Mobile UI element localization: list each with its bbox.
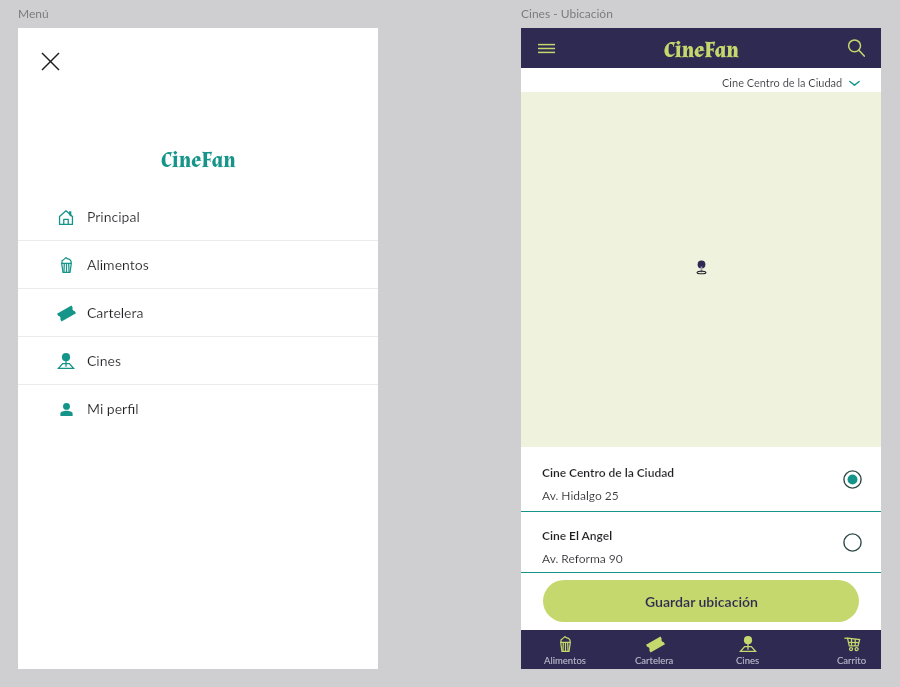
button[interactable]: Cine Centro de la Ciudad xyxy=(521,68,881,92)
button[interactable]: Abrir menú xyxy=(530,32,562,64)
staticText: Alimentos xyxy=(544,655,586,666)
staticText: CineFan xyxy=(161,147,236,174)
button[interactable]: Carrito xyxy=(819,630,885,669)
staticText: Cines - Ubicación xyxy=(521,6,613,20)
staticText: Mi perfil xyxy=(87,400,139,417)
staticText: Principal xyxy=(87,208,140,225)
staticText: Av. Reforma 90 xyxy=(542,551,623,565)
staticText: CineFan xyxy=(664,37,739,64)
staticText: Carrito xyxy=(837,655,867,666)
staticText: Cartelera xyxy=(635,655,674,666)
staticText: Cine Centro de la Ciudad xyxy=(722,76,843,89)
staticText: Guardar ubicación xyxy=(645,593,758,610)
button[interactable]: Mi perfil xyxy=(18,385,378,432)
button[interactable]: Cine Centro de la Ciudad xyxy=(521,447,881,511)
button[interactable]: Guardar ubicación xyxy=(543,580,859,622)
button[interactable]: Cartelera xyxy=(18,289,378,336)
staticText: Av. Hidalgo 25 xyxy=(542,488,619,502)
button[interactable]: Cartelera xyxy=(621,630,687,669)
staticText: Cines xyxy=(736,655,760,666)
staticText: Cines xyxy=(87,352,121,369)
staticText: Cine Centro de la Ciudad xyxy=(542,465,675,479)
button[interactable]: Principal xyxy=(18,193,378,240)
button[interactable]: Cines xyxy=(715,630,781,669)
staticText: Alimentos xyxy=(87,256,149,273)
button[interactable]: Buscar xyxy=(840,32,872,64)
button[interactable]: Alimentos xyxy=(18,241,378,288)
staticText: Cine El Angel xyxy=(542,528,613,542)
staticText: Cartelera xyxy=(87,304,144,321)
staticText: Menú xyxy=(18,6,49,20)
button[interactable]: Cerrar menú xyxy=(35,46,65,76)
button[interactable]: Cines xyxy=(18,337,378,384)
button[interactable]: Cine El Angel xyxy=(521,512,881,572)
button[interactable]: Alimentos xyxy=(532,630,598,669)
